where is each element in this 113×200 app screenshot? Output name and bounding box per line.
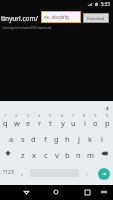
button[interactable]: z: [17, 145, 28, 161]
button[interactable]: ex. abcdefg: [42, 12, 80, 22]
button[interactable]: Backspace: [96, 145, 113, 161]
button[interactable]: 3: [23, 113, 34, 129]
button[interactable]: 7: [68, 113, 79, 129]
button[interactable]: ?123: [0, 164, 16, 180]
button[interactable]: b: [62, 145, 73, 161]
button[interactable]: a: [6, 129, 17, 145]
staticText: .: [86, 168, 88, 178]
staticText: p: [105, 118, 110, 128]
button[interactable]: 5: [45, 113, 56, 129]
staticText: h: [65, 134, 70, 144]
staticText: i: [84, 118, 86, 128]
staticText: s: [21, 134, 25, 144]
staticText: e: [26, 118, 31, 128]
button[interactable]: Recents: [80, 185, 94, 199]
staticText: 6: [61, 113, 64, 119]
button[interactable]: f: [40, 129, 51, 145]
staticText: ex. abcdefg: [44, 14, 69, 20]
staticText: o: [93, 118, 98, 128]
button[interactable]: .: [81, 164, 92, 180]
button[interactable]: ,: [16, 164, 27, 180]
staticText: w: [14, 118, 20, 128]
button[interactable]: n: [73, 145, 84, 161]
staticText: g: [54, 134, 59, 144]
button[interactable]: 2: [11, 113, 22, 129]
staticText: x: [32, 150, 36, 160]
staticText: 3: [27, 113, 30, 119]
button[interactable]: Back: [19, 185, 33, 199]
button[interactable]: Download: [83, 13, 109, 23]
staticText: n: [76, 150, 81, 160]
staticText: l: [101, 134, 103, 144]
staticText: q: [3, 118, 8, 128]
button[interactable]: x: [28, 145, 39, 161]
button[interactable]: g: [51, 129, 62, 145]
staticText: 7: [72, 113, 75, 119]
staticText: 1: [4, 113, 7, 119]
staticText: ?123: [3, 169, 14, 176]
button[interactable]: h: [62, 129, 73, 145]
staticText: f: [44, 134, 47, 144]
button[interactable]: 9: [90, 113, 101, 129]
button[interactable]: d: [28, 129, 39, 145]
button[interactable]: j: [73, 129, 84, 145]
staticText: z: [21, 150, 25, 160]
staticText: y: [61, 118, 65, 128]
staticText: 5:53: [101, 1, 110, 7]
staticText: u: [71, 118, 76, 128]
staticText: Download: [87, 16, 105, 21]
button[interactable]: Home: [49, 185, 63, 199]
button[interactable]: 8: [79, 113, 90, 129]
staticText: 9: [94, 113, 97, 119]
staticText: /storage/emulated/0/Download: [2, 25, 52, 29]
staticText: c: [44, 150, 48, 160]
button[interactable]: Hide keyboard: [97, 185, 111, 199]
button[interactable]: 4: [34, 113, 45, 129]
button[interactable]: k: [85, 129, 96, 145]
button[interactable]: 0: [102, 113, 113, 129]
staticText: v: [55, 150, 59, 160]
button[interactable]: m: [85, 145, 96, 161]
button[interactable]: l: [96, 129, 107, 145]
button[interactable]: Shift: [0, 145, 16, 161]
staticText: 8: [83, 113, 86, 119]
button[interactable]: 1: [0, 113, 11, 129]
button[interactable]: c: [40, 145, 51, 161]
staticText: t: [49, 118, 52, 128]
staticText: b: [65, 150, 70, 160]
button[interactable]: s: [17, 129, 28, 145]
staticText: r: [38, 118, 42, 128]
staticText: 2: [15, 113, 18, 119]
button[interactable]: Voice input: [105, 106, 110, 111]
staticText: k: [88, 134, 93, 144]
staticText: m: [87, 150, 95, 160]
staticText: a: [9, 134, 14, 144]
button[interactable]: v: [51, 145, 62, 161]
staticText: 0: [106, 113, 109, 119]
staticText: j: [78, 134, 80, 144]
staticText: 4: [38, 113, 41, 119]
staticText: tinyurl.com/: [1, 14, 39, 23]
button[interactable]: 6: [57, 113, 68, 129]
staticText: ,: [21, 168, 23, 178]
staticText: 5: [49, 113, 52, 119]
staticText: d: [31, 134, 36, 144]
button[interactable]: Enter: [98, 168, 110, 180]
